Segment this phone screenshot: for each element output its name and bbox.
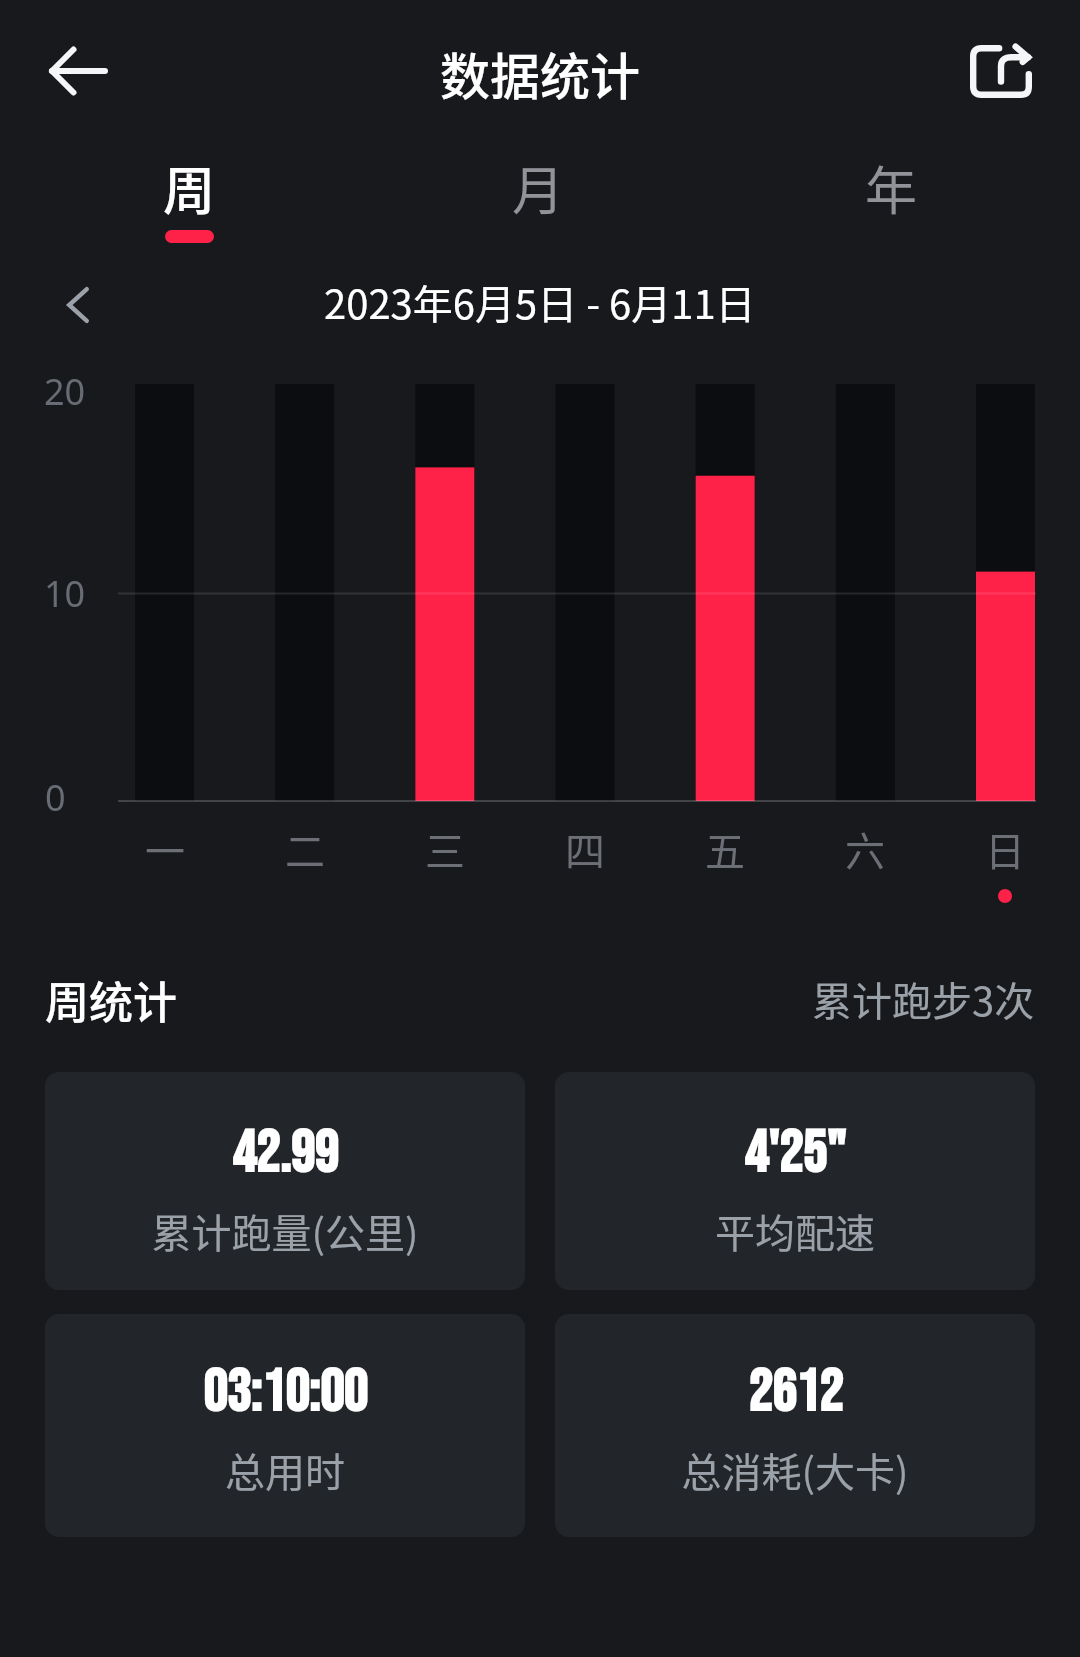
staticText: 五 [705,820,745,878]
button[interactable]: Back [26,25,130,117]
staticText: 周统计 [45,968,177,1032]
staticText: 一 [145,820,185,878]
button[interactable]: 03:10:00 [45,1314,525,1537]
staticText: 数据统计 [440,37,640,109]
staticText: 四 [565,820,605,878]
button[interactable]: Share [956,25,1046,115]
staticText: 2023年6月5日 - 6月11日 [324,273,756,331]
staticText: 10 [44,569,86,618]
staticText: 03:10:00 [203,1358,367,1429]
staticText: 日 [985,820,1025,878]
staticText: 累计跑步3次 [812,970,1035,1028]
staticText: 总消耗(大卡) [681,1441,909,1499]
staticText: 42.99 [232,1119,338,1190]
staticText: 三 [425,820,465,878]
staticText: 周 [163,150,216,225]
staticText: 平均配速 [715,1202,875,1260]
staticText: 二 [285,820,325,878]
button[interactable]: 月 [428,150,648,260]
staticText: 0 [45,773,66,822]
button[interactable]: 2612 [555,1314,1035,1537]
button[interactable]: 4'25" [555,1072,1035,1290]
staticText: 年 [865,150,918,225]
staticText: 累计跑量(公里) [151,1202,419,1260]
button[interactable]: 年 [781,150,1001,260]
staticText: 月 [512,150,565,225]
staticText: 20 [44,367,86,416]
staticText: 六 [845,820,885,878]
staticText: 4'25" [744,1119,846,1190]
staticText: 2612 [748,1358,843,1429]
button[interactable]: 周 [79,150,299,260]
button[interactable]: Previous week [36,263,120,347]
staticText: 总用时 [225,1441,345,1499]
button[interactable]: 42.99 [45,1072,525,1290]
